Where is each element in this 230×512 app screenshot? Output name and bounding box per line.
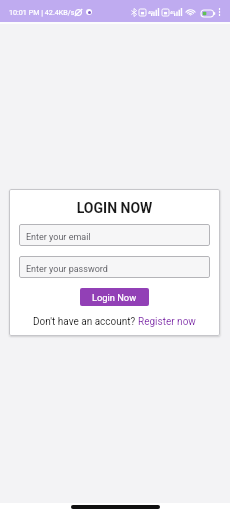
button[interactable]: Home [71,505,160,509]
staticText: Enter your password [26,264,108,275]
staticText: Don't have an account? [33,316,138,328]
button[interactable]: Enter your email [19,224,210,246]
staticText: Register now [138,316,196,328]
button[interactable]: Enter your password [19,256,210,278]
staticText: LOGIN NOW [9,200,220,216]
staticText: 4G [170,10,175,15]
staticText: 10:01 PM | 42.4KB/s [9,8,75,16]
button[interactable]: Register now [138,316,196,328]
staticText: 4G [148,10,153,15]
staticText: Enter your email [26,232,91,243]
button[interactable]: Login Now [80,288,149,306]
staticText: Login Now [92,292,137,303]
